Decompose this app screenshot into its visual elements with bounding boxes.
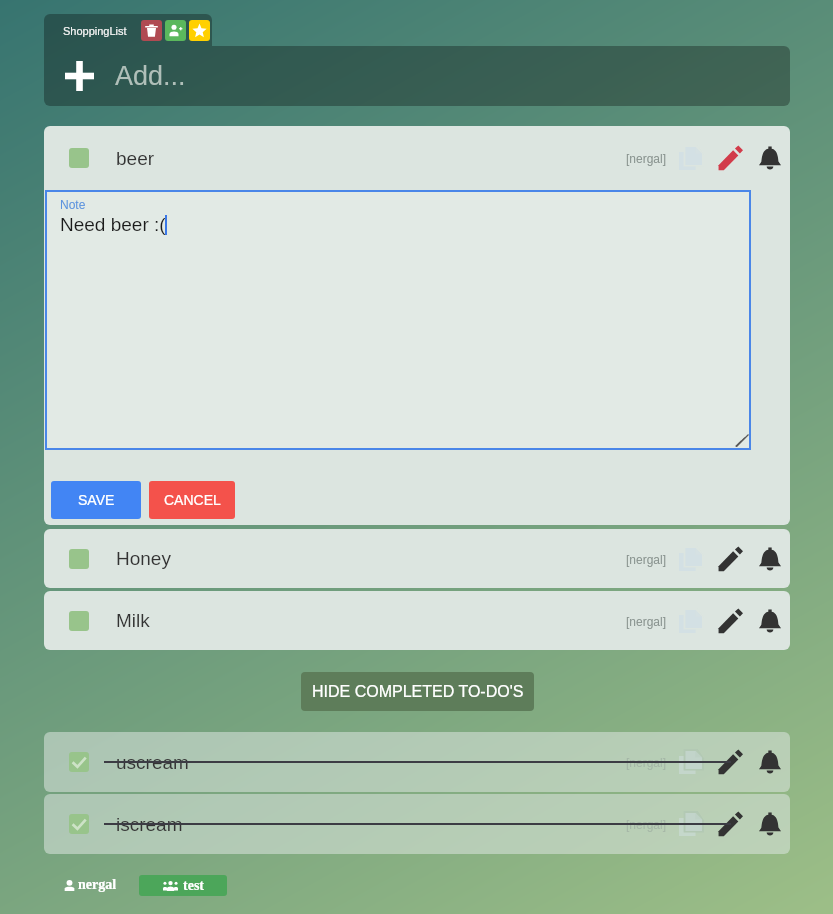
staticText: Milk — [116, 610, 150, 631]
staticText: Need beer :( — [60, 214, 166, 235]
button[interactable]: uscream — [44, 732, 790, 792]
staticText: Note — [60, 198, 86, 211]
button[interactable]: Copy — [670, 804, 710, 844]
button[interactable]: Milk — [44, 591, 790, 650]
staticText: SAVE — [78, 492, 115, 508]
other: Add — [65, 61, 94, 91]
button[interactable]: Copy — [670, 539, 710, 579]
staticText: ShoppingList — [63, 25, 127, 37]
button[interactable]: CANCEL — [149, 481, 235, 519]
button[interactable]: beer — [44, 126, 790, 190]
button[interactable]: Edit — [710, 601, 750, 641]
staticText: Honey — [116, 548, 171, 569]
button[interactable]: Reminder — [750, 138, 790, 178]
button[interactable]: Honey — [44, 529, 790, 588]
staticText: nergal — [78, 877, 117, 893]
button[interactable]: Reminder — [750, 742, 790, 782]
staticText: iscream — [116, 814, 183, 835]
button[interactable]: Edit — [710, 804, 750, 844]
staticText: [nergal] — [626, 615, 667, 628]
staticText: [nergal] — [626, 756, 667, 769]
button[interactable]: iscream — [44, 794, 790, 854]
staticText: [nergal] — [626, 152, 667, 165]
button[interactable]: Copy — [670, 138, 710, 178]
staticText: Add... — [115, 61, 186, 91]
button[interactable]: Edit — [710, 742, 750, 782]
button[interactable]: Add person — [165, 20, 186, 41]
button[interactable]: Copy — [670, 601, 710, 641]
staticText: HIDE COMPLETED TO-DO'S — [312, 683, 524, 701]
button[interactable]: test — [139, 875, 227, 896]
button[interactable]: SAVE — [51, 481, 141, 519]
other: User — [64, 880, 75, 891]
button[interactable]: Delete — [141, 20, 162, 41]
staticText: [nergal] — [626, 553, 667, 566]
button[interactable]: Reminder — [750, 601, 790, 641]
button[interactable]: ShoppingList — [44, 14, 212, 46]
button[interactable]: Favourite — [189, 20, 210, 41]
staticText: [nergal] — [626, 818, 667, 831]
button[interactable]: Edit — [710, 138, 750, 178]
staticText: test — [183, 878, 204, 894]
button[interactable]: User — [64, 874, 117, 896]
button[interactable]: HIDE COMPLETED TO-DO'S — [301, 672, 534, 711]
button[interactable]: Reminder — [750, 804, 790, 844]
button[interactable]: Edit — [710, 539, 750, 579]
button[interactable]: Copy — [670, 742, 710, 782]
button[interactable]: Reminder — [750, 539, 790, 579]
button[interactable]: Add — [44, 46, 790, 106]
staticText: uscream — [116, 752, 189, 773]
staticText: beer — [116, 148, 155, 169]
staticText: CANCEL — [164, 492, 221, 508]
